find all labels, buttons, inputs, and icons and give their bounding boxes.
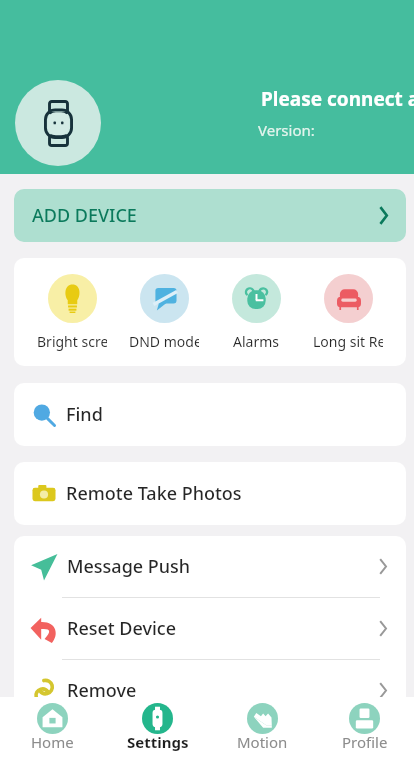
- staticText: Reset Device: [67, 616, 177, 641]
- staticText: Home: [31, 732, 74, 752]
- button[interactable]: Remove: [14, 660, 406, 721]
- button[interactable]: Long sit Remind: [302, 274, 394, 351]
- button[interactable]: DND mode: [118, 274, 210, 351]
- staticText: DND mode: [129, 332, 199, 351]
- staticText: Find: [66, 402, 103, 427]
- staticText: Version:: [258, 120, 315, 140]
- button[interactable]: Home: [0, 697, 105, 760]
- button[interactable]: Remote Take Photos: [14, 462, 406, 525]
- button[interactable]: Motion: [210, 697, 315, 760]
- staticText: Remove: [67, 678, 137, 703]
- staticText: Long sit Remind: [313, 332, 383, 351]
- button[interactable]: ADD DEVICE: [14, 189, 406, 242]
- staticText: Please connect a device: [261, 86, 414, 112]
- button[interactable]: Profile: [315, 697, 414, 760]
- button[interactable]: Settings: [105, 697, 210, 760]
- button[interactable]: Reset Device: [14, 598, 406, 660]
- button[interactable]: Device: [15, 80, 101, 166]
- button[interactable]: Alarms: [210, 274, 302, 351]
- staticText: Settings: [127, 732, 189, 752]
- staticText: Profile: [342, 732, 388, 752]
- staticText: Alarms: [233, 332, 279, 351]
- staticText: Bright screen: [37, 332, 107, 351]
- staticText: ADD DEVICE: [32, 203, 137, 228]
- button[interactable]: Message Push: [14, 536, 406, 598]
- button[interactable]: Find: [14, 383, 406, 446]
- staticText: Motion: [237, 732, 288, 752]
- staticText: Remote Take Photos: [66, 481, 242, 506]
- button[interactable]: Bright screen: [26, 274, 118, 351]
- staticText: Message Push: [67, 554, 191, 579]
